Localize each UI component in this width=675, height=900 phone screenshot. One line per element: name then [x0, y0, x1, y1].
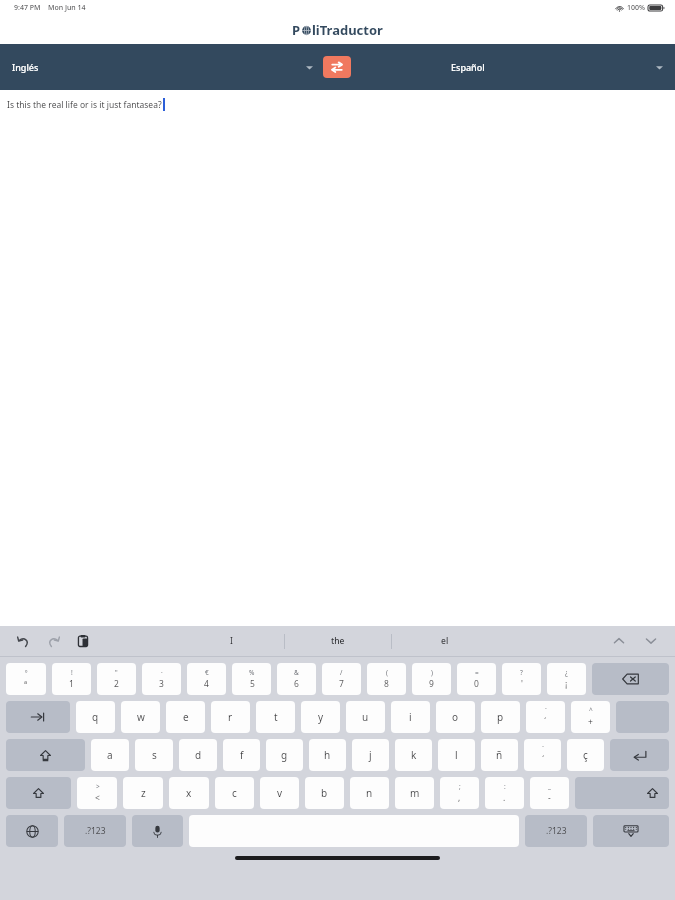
button[interactable]: ` — [526, 701, 565, 733]
button[interactable]: h — [309, 739, 346, 771]
button[interactable]: Tab — [6, 701, 70, 733]
button[interactable]: i — [391, 701, 430, 733]
button[interactable]: g — [266, 739, 303, 771]
staticText: j — [369, 748, 372, 762]
button[interactable]: & — [277, 663, 316, 695]
button[interactable]: ñ — [481, 739, 518, 771]
button[interactable]: ) — [412, 663, 451, 695]
button[interactable]: Hide keyboard — [593, 815, 669, 847]
button[interactable]: Undo — [14, 632, 32, 650]
button[interactable]: a — [91, 739, 129, 771]
button[interactable]: u — [346, 701, 385, 733]
button[interactable]: .?123 — [64, 815, 126, 847]
button[interactable]: z — [123, 777, 163, 809]
button[interactable]: > — [77, 777, 117, 809]
button[interactable]: " — [97, 663, 136, 695]
button[interactable]: ç — [567, 739, 604, 771]
button[interactable]: Shift — [6, 777, 71, 809]
button[interactable]: k — [395, 739, 432, 771]
button[interactable]: Swap languages — [323, 56, 351, 78]
staticText: € — [205, 668, 209, 677]
staticText: , — [458, 792, 461, 804]
staticText: liTraductor — [312, 21, 383, 39]
button[interactable]: x — [169, 777, 209, 809]
staticText: ( — [386, 668, 388, 677]
button[interactable]: Previous — [609, 631, 629, 651]
button[interactable]: Change language — [6, 815, 58, 847]
button[interactable]: m — [395, 777, 434, 809]
button[interactable]: o — [436, 701, 475, 733]
button[interactable]: Return — [610, 739, 669, 771]
button[interactable]: : — [485, 777, 524, 809]
staticText: g — [281, 748, 288, 762]
button[interactable]: Paste — [74, 632, 92, 650]
button[interactable]: l — [438, 739, 475, 771]
staticText: ^ — [589, 706, 593, 715]
staticText: + — [588, 716, 593, 728]
button[interactable]: ¨ — [524, 739, 561, 771]
button[interactable]: Caps lock — [6, 739, 85, 771]
button[interactable]: .?123 — [525, 815, 587, 847]
button[interactable]: c — [215, 777, 254, 809]
button[interactable]: t — [256, 701, 295, 733]
button[interactable]: w — [121, 701, 160, 733]
button[interactable]: Redo — [44, 632, 62, 650]
button[interactable]: p — [481, 701, 520, 733]
staticText: b — [321, 786, 328, 800]
staticText: ¿ — [565, 668, 568, 677]
button[interactable]: ! — [52, 663, 91, 695]
button[interactable]: € — [187, 663, 226, 695]
button[interactable]: ? — [502, 663, 541, 695]
staticText: ) — [431, 668, 433, 677]
button[interactable]: r — [211, 701, 250, 733]
staticText: ¡ — [565, 678, 568, 690]
button[interactable]: s — [135, 739, 173, 771]
button[interactable]: Shift — [575, 777, 669, 809]
button[interactable]: = — [457, 663, 496, 695]
button[interactable]: d — [179, 739, 217, 771]
button[interactable]: f — [223, 739, 260, 771]
staticText: P — [292, 21, 301, 39]
staticText: .?123 — [546, 825, 567, 837]
button[interactable]: I — [178, 626, 284, 656]
staticText: 8 — [384, 678, 389, 690]
button[interactable]: b — [305, 777, 344, 809]
button[interactable]: · — [142, 663, 181, 695]
button[interactable]: ( — [367, 663, 406, 695]
button[interactable]: ¿ — [547, 663, 586, 695]
button[interactable]: Español — [351, 44, 675, 90]
button[interactable]: the — [285, 626, 391, 656]
button[interactable]: Next — [641, 631, 661, 651]
button[interactable]: n — [350, 777, 389, 809]
button[interactable]: / — [322, 663, 361, 695]
button[interactable]: Is this the real life or is it just fant… — [0, 90, 675, 626]
button[interactable]: Inglés — [0, 44, 323, 90]
button[interactable]: v — [260, 777, 299, 809]
staticText: ? — [520, 668, 523, 677]
button[interactable]: ^ — [571, 701, 610, 733]
button[interactable]: _ — [530, 777, 569, 809]
button[interactable]: q — [76, 701, 115, 733]
staticText: q — [92, 710, 99, 724]
staticText: : — [504, 782, 506, 791]
button[interactable]: º — [6, 663, 46, 695]
staticText: Inglés — [12, 61, 39, 73]
staticText: u — [362, 710, 369, 724]
staticText: 4 — [204, 678, 209, 690]
button[interactable]: j — [352, 739, 389, 771]
staticText: ç — [583, 748, 588, 762]
button[interactable]: y — [301, 701, 340, 733]
staticText: · — [161, 668, 163, 677]
staticText: n — [366, 786, 373, 800]
staticText: I — [230, 635, 233, 647]
button[interactable]: Dictate — [132, 815, 183, 847]
button[interactable]: Backspace — [592, 663, 669, 695]
button[interactable]: % — [232, 663, 271, 695]
button[interactable]: ; — [440, 777, 479, 809]
staticText: 6 — [294, 678, 299, 690]
button[interactable]: el — [392, 626, 498, 656]
staticText: el — [441, 635, 449, 647]
button[interactable]: e — [166, 701, 205, 733]
